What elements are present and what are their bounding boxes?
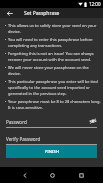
button[interactable]: Back	[0, 8, 19, 18]
staticText: This particular passphrase you enter wil…	[8, 79, 101, 97]
staticText: Forgetting this is not an issue! You can…	[8, 51, 101, 63]
button[interactable]: Home	[35, 167, 69, 183]
staticText: Set Passphrase	[24, 10, 60, 17]
button[interactable]: Verify Password	[6, 136, 97, 145]
staticText: FINISH	[45, 149, 59, 155]
staticText: Your passphrase must be 8 to 28 characte…	[8, 99, 101, 111]
staticText: 12:00	[89, 1, 101, 7]
staticText: You will need to enter this passphrase b…	[8, 37, 101, 49]
button[interactable]: Password	[6, 119, 97, 128]
other: Show password	[89, 118, 97, 124]
staticText: We will never store your passphrase on t…	[8, 65, 101, 77]
staticText: This allows us to safely store your seed…	[8, 23, 101, 35]
staticText: Password	[6, 119, 27, 125]
button[interactable]: Back	[0, 167, 35, 183]
staticText: Verify Password	[6, 136, 41, 142]
button[interactable]: FINISH	[6, 145, 97, 158]
button[interactable]: Recent apps	[69, 167, 103, 183]
